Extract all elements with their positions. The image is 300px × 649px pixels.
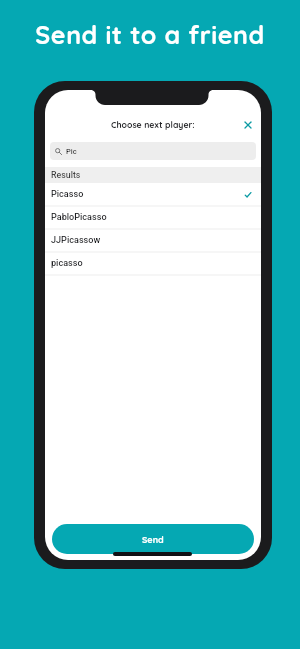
button[interactable]: picasso bbox=[45, 252, 261, 275]
staticText: Pic bbox=[66, 147, 77, 156]
button[interactable]: PabloPicasso bbox=[45, 206, 261, 229]
staticText: Send bbox=[142, 534, 164, 545]
button[interactable]: Send bbox=[52, 524, 254, 554]
button[interactable]: Close dialog bbox=[241, 118, 255, 132]
staticText: PabloPicasso bbox=[51, 212, 107, 223]
staticText: Choose next player: bbox=[111, 119, 195, 130]
staticText: Picasso bbox=[51, 189, 84, 200]
staticText: JJPicassow bbox=[51, 235, 101, 246]
button[interactable]: Picasso bbox=[45, 183, 261, 206]
staticText: picasso bbox=[51, 258, 83, 269]
button[interactable]: JJPicassow bbox=[45, 229, 261, 252]
staticText: Send it to a friend bbox=[35, 19, 265, 50]
staticText: Results bbox=[51, 170, 81, 180]
button[interactable]: Pic bbox=[50, 142, 256, 160]
